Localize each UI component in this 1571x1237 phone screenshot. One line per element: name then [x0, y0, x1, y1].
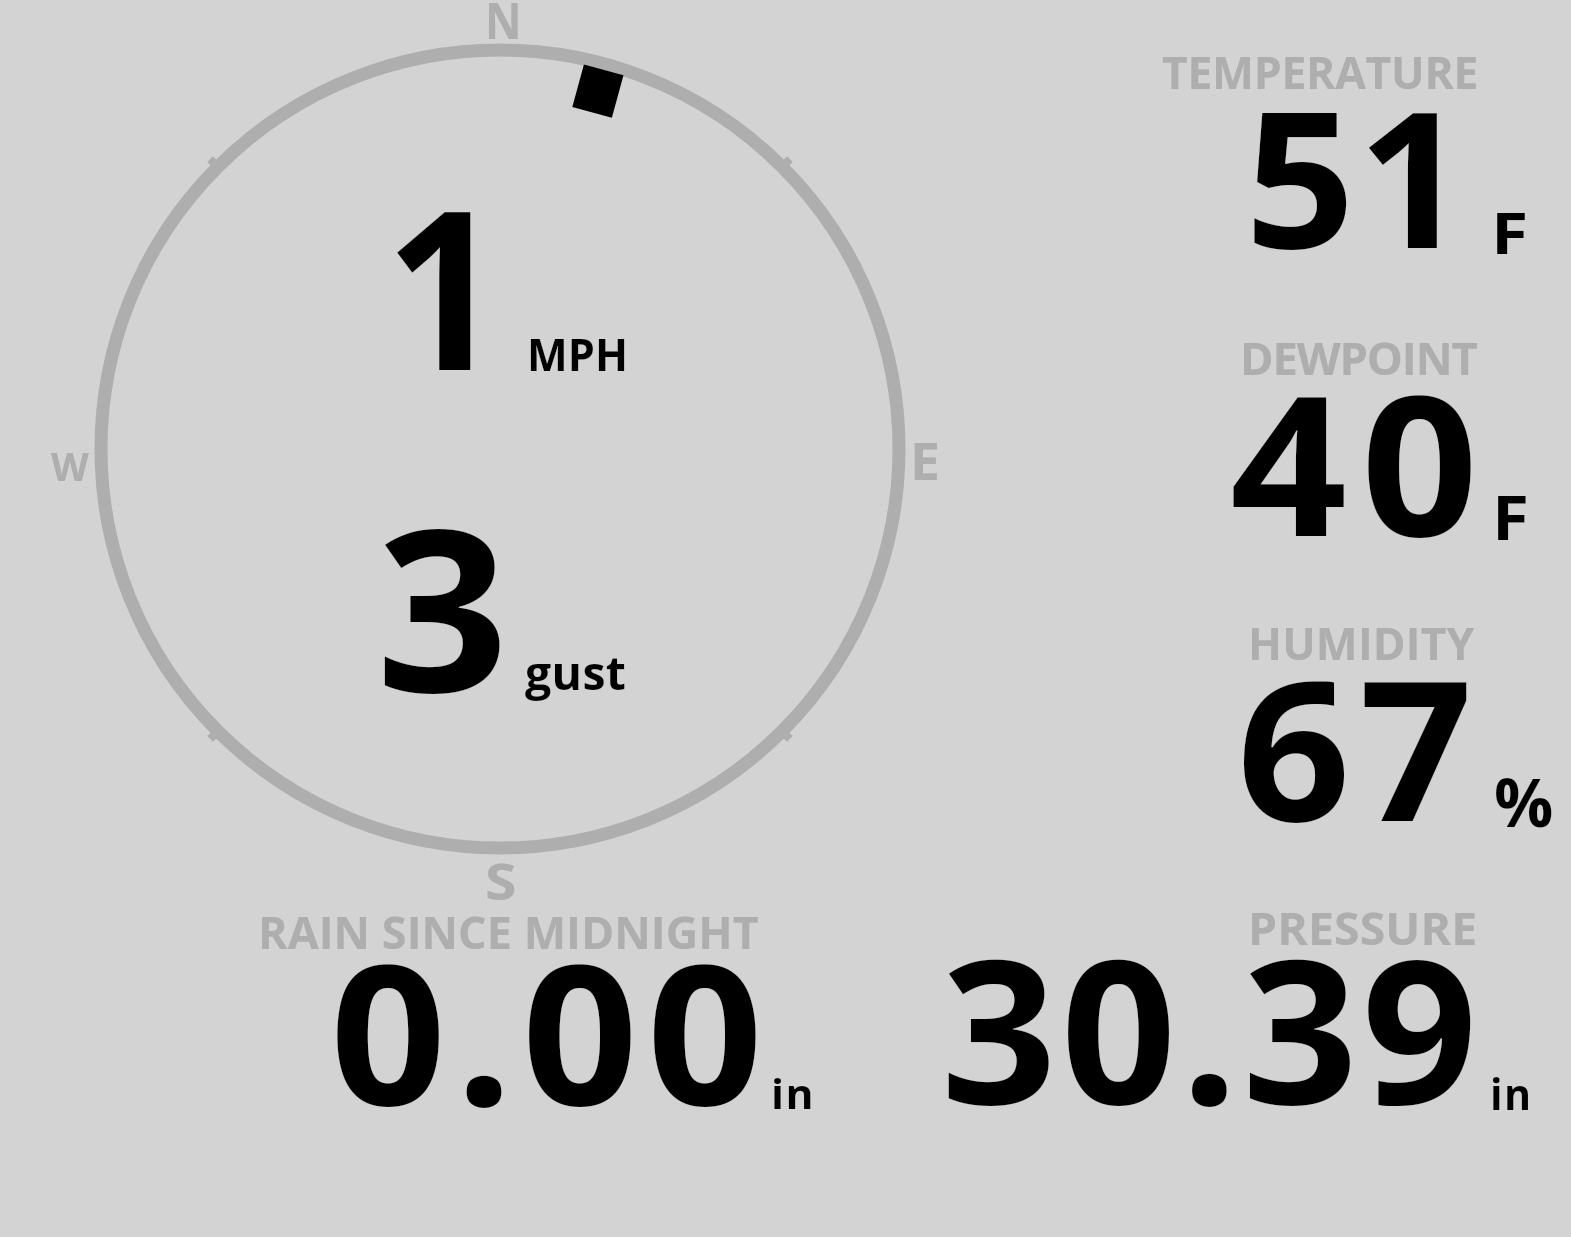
staticText: % [1494, 757, 1554, 846]
staticText: N [485, 0, 522, 54]
staticText: 40 [1230, 329, 1493, 592]
staticText: gust [525, 641, 627, 704]
staticText: S [485, 846, 518, 915]
staticText: TEMPERATURE [1162, 42, 1478, 102]
staticText: 30.39 [941, 892, 1482, 1147]
staticText: in [771, 1064, 815, 1121]
staticText: 51 [1245, 47, 1471, 303]
button[interactable]: HUMIDITY [1120, 596, 1571, 862]
button[interactable]: PRESSURE [900, 880, 1571, 1135]
button[interactable]: TEMPERATURE [1120, 28, 1571, 294]
button[interactable]: Wind compass: 1 MPH, gusting 3, from the… [40, 0, 960, 905]
staticText: F [1492, 476, 1529, 558]
staticText: F [1491, 192, 1528, 271]
staticText: RAIN SINCE MIDNIGHT [258, 901, 759, 962]
staticText: 1 [385, 134, 504, 435]
staticText: MPH [527, 323, 629, 384]
staticText: 3 [376, 453, 510, 758]
staticText: DEWPOINT [1240, 327, 1477, 388]
staticText: W [51, 439, 89, 492]
button[interactable]: DEWPOINT [1120, 312, 1571, 576]
staticText: E [910, 425, 940, 495]
staticText: 0.00 [330, 898, 772, 1153]
staticText: PRESSURE [1248, 897, 1478, 958]
staticText: HUMIDITY [1248, 613, 1475, 673]
staticText: in [1490, 1063, 1533, 1122]
button[interactable]: RAIN SINCE MIDNIGHT [200, 880, 900, 1135]
staticText: 67 [1237, 614, 1482, 877]
